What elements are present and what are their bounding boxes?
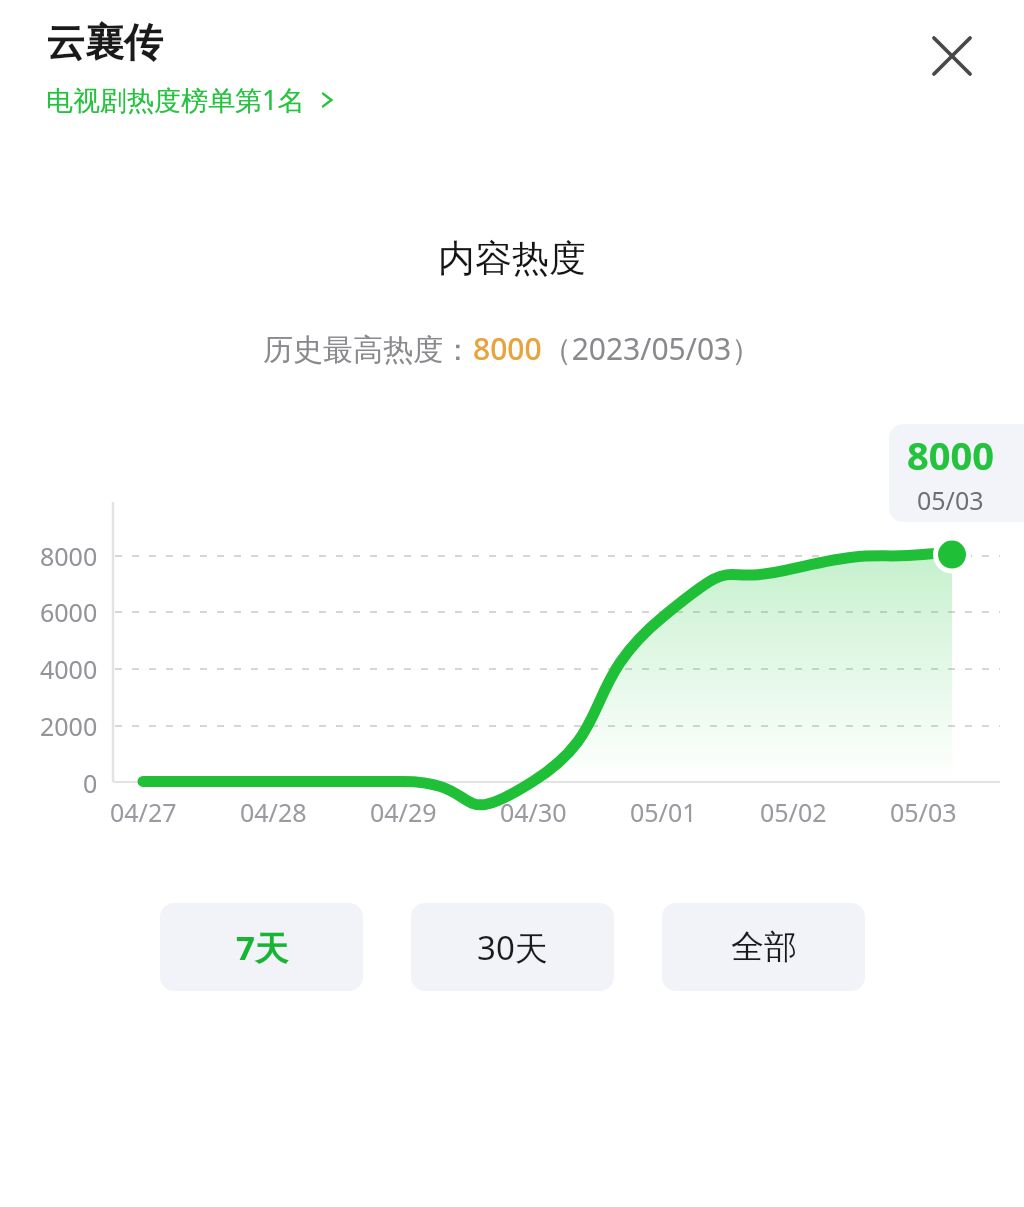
button[interactable]: 全部 <box>662 903 865 991</box>
staticText: 04/29 <box>370 795 437 829</box>
staticText: 云襄传 <box>46 18 163 67</box>
staticText: 电视剧热度榜单第1名 <box>46 81 305 118</box>
staticText: 全部 <box>731 926 797 968</box>
staticText: 04/30 <box>500 795 567 829</box>
staticText: 05/01 <box>630 795 697 829</box>
staticText: 4000 <box>40 652 98 686</box>
staticText: 8000 <box>40 539 98 573</box>
staticText: 04/28 <box>240 795 307 829</box>
staticText: 30天 <box>477 925 548 970</box>
button[interactable]: 30天 <box>411 903 614 991</box>
staticText: 内容热度 <box>438 235 586 282</box>
staticText: 6000 <box>40 595 98 629</box>
staticText: 历史最高热度：8000（2023/05/03） <box>263 328 762 369</box>
staticText: 8000 <box>907 429 994 481</box>
staticText: 05/03 <box>917 483 984 517</box>
staticText: 2000 <box>40 709 98 743</box>
staticText: 0 <box>83 766 98 800</box>
button[interactable]: 7天 <box>160 903 363 991</box>
staticText: 05/03 <box>890 795 957 829</box>
button[interactable]: Close <box>904 8 1000 104</box>
button[interactable]: 电视剧热度榜单第1名 <box>46 81 337 118</box>
staticText: 04/27 <box>110 795 177 829</box>
staticText: 05/02 <box>760 795 827 829</box>
staticText: 7天 <box>236 925 288 970</box>
